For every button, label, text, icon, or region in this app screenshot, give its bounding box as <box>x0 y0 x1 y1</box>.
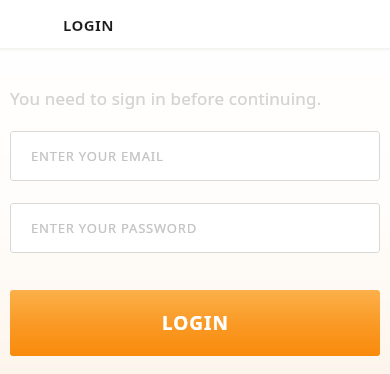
button[interactable]: LOGIN <box>10 290 380 356</box>
button[interactable]: ENTER YOUR PASSWORD <box>10 203 380 253</box>
staticText: You need to sign in before continuing. <box>10 87 380 110</box>
button[interactable]: ENTER YOUR EMAIL <box>10 131 380 181</box>
staticText: LOGIN <box>162 310 229 336</box>
staticText: ENTER YOUR EMAIL <box>31 147 164 165</box>
staticText: LOGIN <box>63 15 114 35</box>
staticText: ENTER YOUR PASSWORD <box>31 219 197 237</box>
